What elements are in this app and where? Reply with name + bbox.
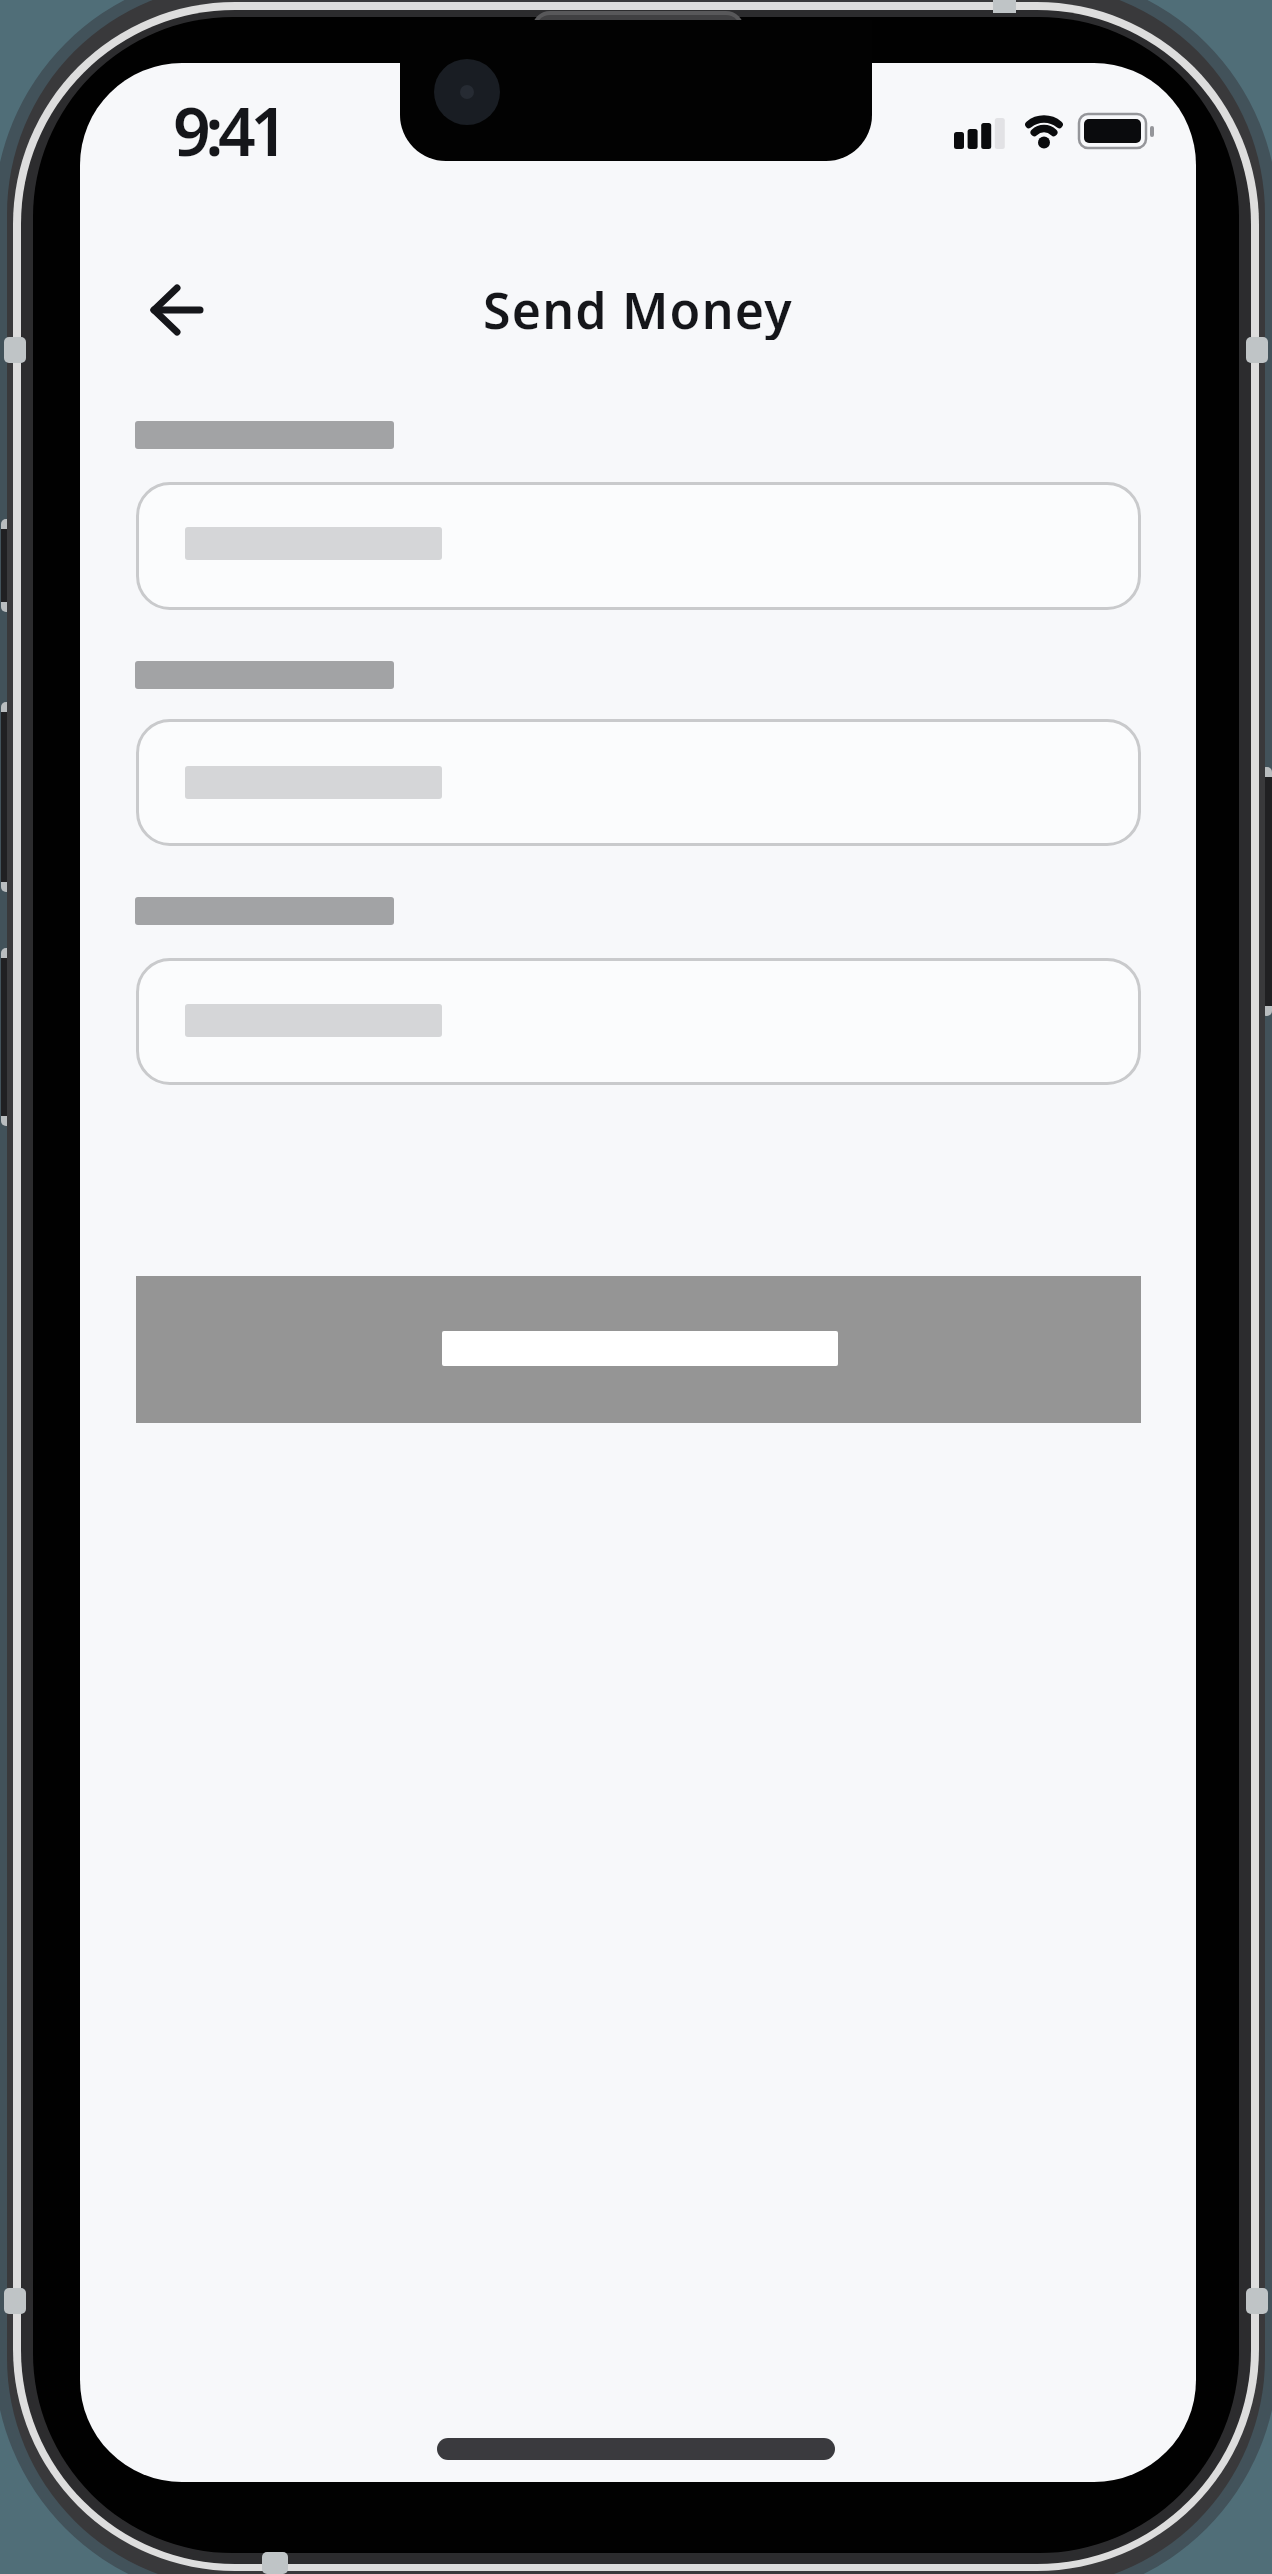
button[interactable] [136, 1276, 1141, 1423]
staticText: Send Money [483, 276, 793, 340]
button[interactable] [140, 276, 214, 344]
button[interactable] [136, 719, 1141, 846]
button[interactable] [136, 482, 1141, 610]
button[interactable] [136, 958, 1141, 1085]
staticText: 9:41 [173, 85, 283, 175]
